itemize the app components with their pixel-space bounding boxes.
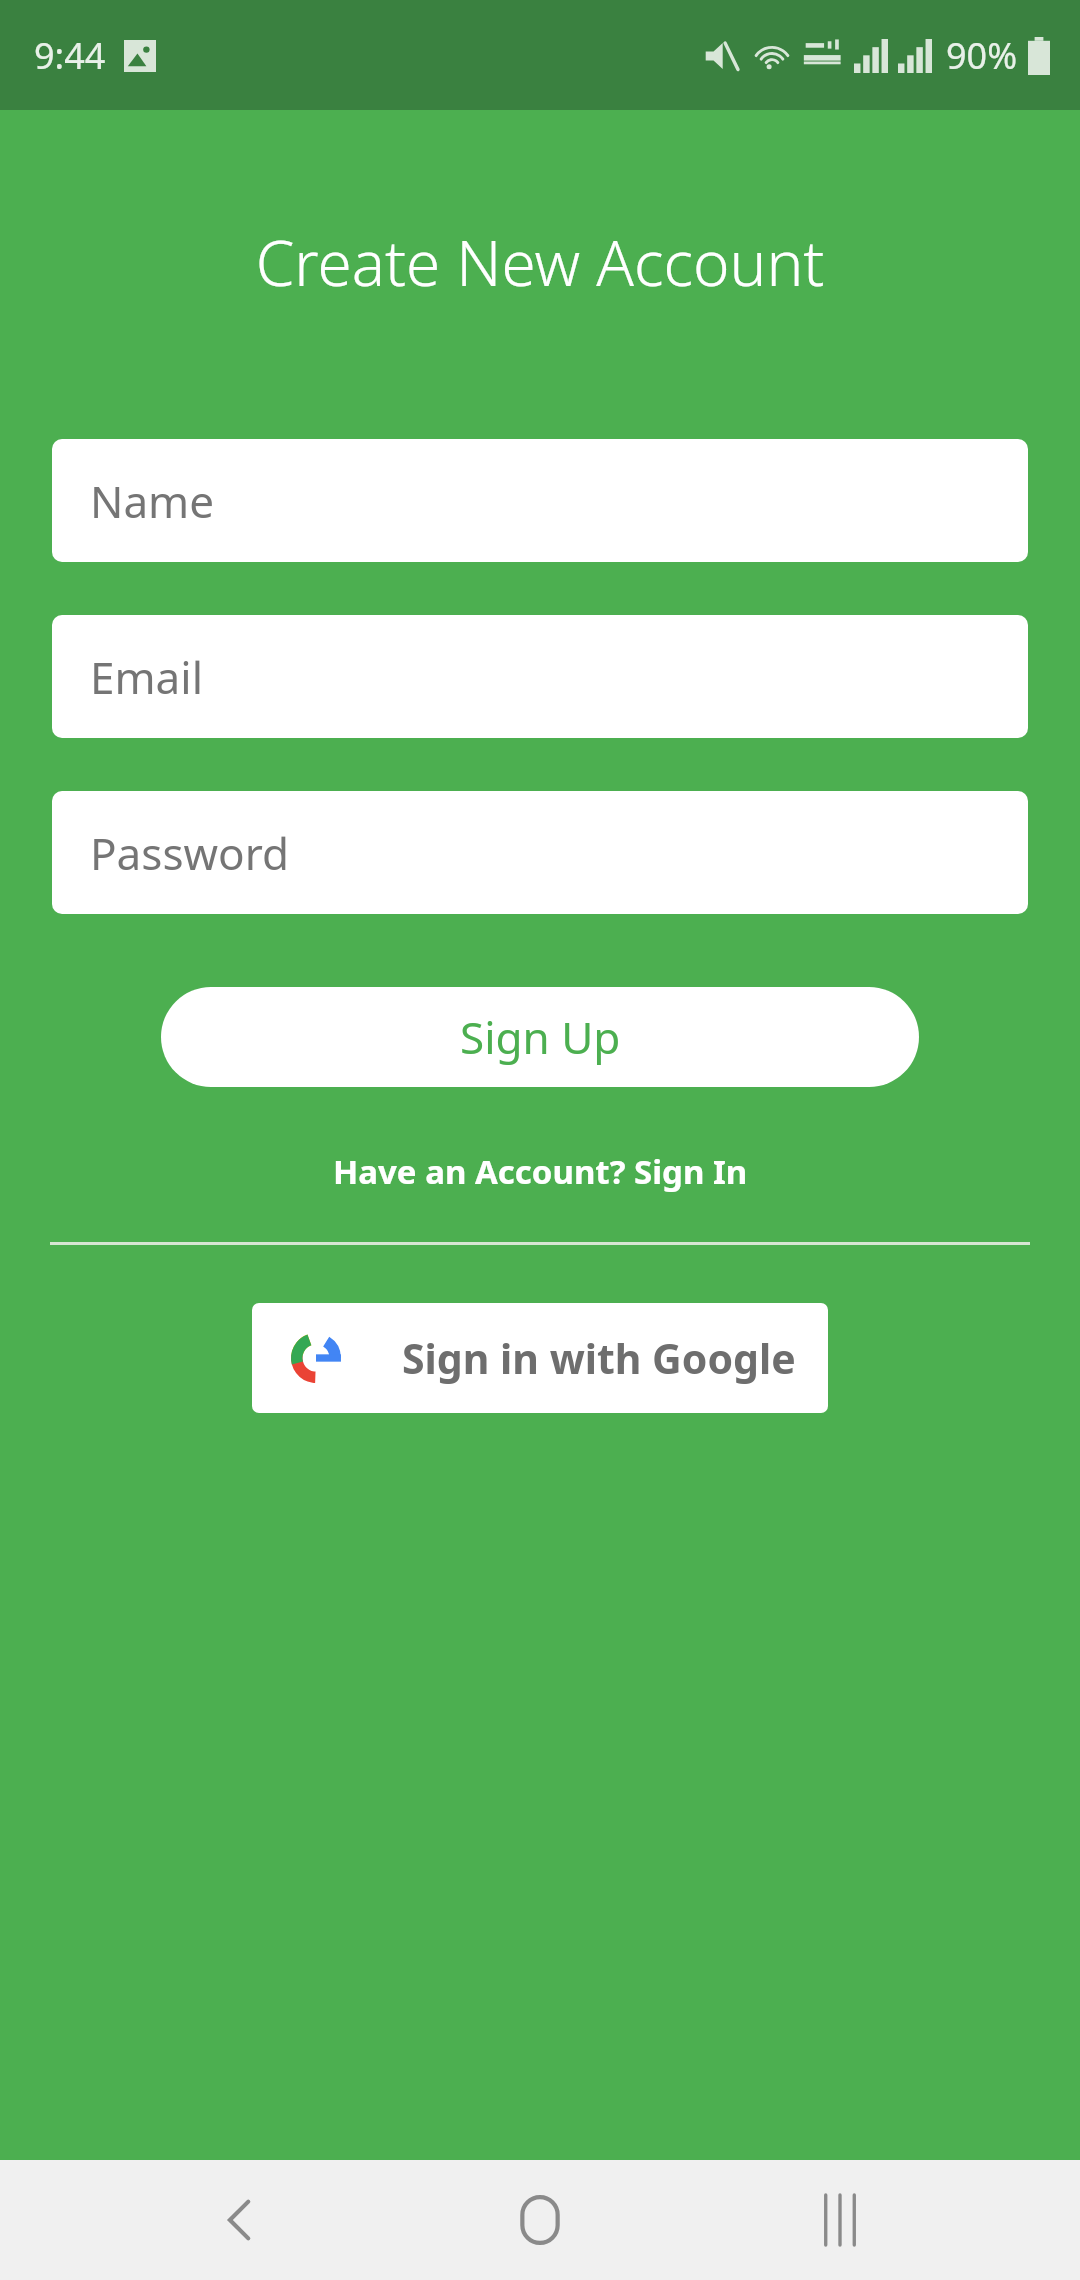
button[interactable]: Sign Up: [161, 987, 919, 1087]
staticText: Sign Up: [460, 1007, 621, 1067]
staticText: Sign in with Google: [402, 1330, 796, 1386]
button[interactable]: Name: [52, 439, 1028, 562]
button[interactable]: Recent apps: [780, 2160, 900, 2280]
staticText: Email: [90, 647, 203, 707]
button[interactable]: Password: [52, 791, 1028, 914]
staticText: 9:44: [34, 31, 106, 80]
button[interactable]: Back: [180, 2160, 300, 2280]
button[interactable]: Home: [480, 2160, 600, 2280]
staticText: Have an Account? Sign In: [333, 1149, 748, 1194]
staticText: 90%: [946, 31, 1018, 80]
button[interactable]: Have an Account? Sign In: [321, 1143, 760, 1200]
staticText: Create New Account: [0, 220, 1080, 304]
button[interactable]: Email: [52, 615, 1028, 738]
staticText: Password: [90, 823, 290, 883]
button[interactable]: Sign in with Google: [252, 1303, 828, 1413]
staticText: Name: [90, 471, 215, 531]
